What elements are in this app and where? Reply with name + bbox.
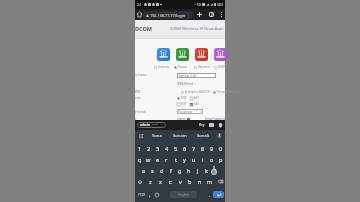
button[interactable]: Passwords	[199, 122, 205, 128]
button[interactable]: i	[198, 154, 207, 165]
button[interactable]: n	[195, 176, 205, 187]
button[interactable]: Home	[135, 9, 143, 20]
staticText: Router	[178, 65, 188, 69]
button[interactable]: Sona	[146, 130, 168, 141]
staticText: c	[169, 178, 172, 185]
button[interactable]: Sonali	[191, 130, 214, 141]
staticText: admin	[140, 123, 151, 127]
button[interactable]: Sonipat 2.4G	[177, 73, 216, 78]
button[interactable]: o	[207, 154, 216, 165]
staticText: 9	[210, 145, 214, 152]
button[interactable]: Comma	[147, 187, 153, 202]
button[interactable]: y	[180, 154, 189, 165]
button[interactable]: 2	[144, 143, 153, 154]
button[interactable]: 7	[189, 143, 198, 154]
button[interactable]: r	[162, 154, 171, 165]
button[interactable]: More options	[218, 9, 225, 20]
staticText: x	[159, 178, 162, 185]
button[interactable]: j	[193, 165, 202, 176]
button[interactable]: b	[185, 176, 195, 187]
button[interactable]: t	[171, 154, 180, 165]
button[interactable]: s	[148, 165, 157, 176]
button[interactable]: 0	[216, 143, 225, 154]
button[interactable]: Repeater	[194, 65, 214, 69]
button[interactable]: Shift	[135, 176, 145, 187]
button[interactable]: WPA-Mixed	[177, 82, 196, 86]
button[interactable]: Payment cards	[208, 122, 214, 128]
button[interactable]: WISP	[214, 48, 227, 61]
staticText: e	[156, 156, 160, 163]
button[interactable]: w	[144, 154, 153, 165]
button[interactable]: Keyboard settings	[135, 130, 146, 141]
button[interactable]: Voice input	[214, 130, 225, 141]
button[interactable]: Router	[174, 65, 194, 69]
staticText: 34%	[217, 3, 223, 7]
button[interactable]: Internet Port	[154, 65, 174, 69]
button[interactable]: Show Password	[205, 117, 225, 121]
button[interactable]: admin	[177, 116, 198, 121]
button[interactable]: AES	[190, 96, 199, 100]
staticText: suite	[135, 96, 141, 100]
staticText: d	[160, 167, 164, 174]
staticText: y	[183, 156, 186, 163]
button[interactable]: Sonam	[168, 130, 191, 141]
button[interactable]: l	[211, 165, 220, 176]
staticText: m	[207, 178, 213, 185]
staticText: 5G	[197, 3, 201, 7]
button[interactable]: 6	[180, 143, 189, 154]
button[interactable]: d	[157, 165, 166, 176]
button[interactable]: 8	[198, 143, 207, 154]
button[interactable]: Addresses	[217, 122, 223, 128]
staticText: Passphrase	[178, 110, 193, 114]
button[interactable]: Period	[207, 187, 213, 202]
button[interactable]: 3	[153, 143, 162, 154]
staticText: TKIP	[181, 102, 187, 106]
button[interactable]: 9	[207, 143, 216, 154]
staticText: o	[210, 156, 214, 163]
staticText: Key	[199, 123, 205, 127]
button[interactable]: e	[153, 154, 162, 165]
button[interactable]: 5	[171, 143, 180, 154]
button[interactable]: Internet Port	[157, 48, 170, 61]
button[interactable]: x	[155, 176, 165, 187]
button[interactable]: admin	[137, 122, 166, 128]
button[interactable]: Enter	[213, 191, 224, 198]
button[interactable]: Enterprise (RADIUS)	[181, 90, 211, 94]
button[interactable]: h	[184, 165, 193, 176]
button[interactable]: Emoji	[153, 187, 160, 202]
button[interactable]: u	[189, 154, 198, 165]
button[interactable]: ?123	[136, 187, 147, 202]
button[interactable]: Switch tabs	[205, 9, 218, 20]
button[interactable]: z	[145, 176, 155, 187]
button[interactable]: TKIP	[177, 102, 187, 106]
button[interactable]: g	[175, 165, 184, 176]
button[interactable]: Passphrase	[177, 109, 203, 114]
button[interactable]: New tab	[193, 9, 205, 20]
button[interactable]: Personal (Pre-Sha	[213, 90, 240, 94]
button[interactable]: Repeater	[195, 48, 208, 61]
button[interactable]: 192.168.77.77/login	[143, 11, 193, 19]
button[interactable]: 4	[162, 143, 171, 154]
staticText: b	[188, 178, 192, 185]
button[interactable]: f	[166, 165, 175, 176]
button[interactable]: a	[140, 165, 148, 176]
button[interactable]: TKIP	[177, 96, 187, 100]
button[interactable]: q	[135, 154, 144, 165]
staticText: Sonam	[173, 133, 187, 139]
button[interactable]: c	[165, 176, 175, 187]
button[interactable]: 1	[135, 143, 144, 154]
button[interactable]: Backspace	[215, 176, 225, 187]
staticText: a	[142, 167, 146, 174]
button[interactable]: v	[175, 176, 185, 187]
button[interactable]: p	[216, 154, 225, 165]
button[interactable]: m	[205, 176, 215, 187]
staticText: f	[170, 167, 172, 174]
staticText: n	[198, 178, 202, 185]
button[interactable]: AES	[190, 102, 199, 106]
button[interactable]: k	[202, 165, 211, 176]
button[interactable]: Router	[176, 48, 189, 61]
staticText: ,	[149, 192, 151, 198]
button[interactable]: Space	[170, 191, 197, 198]
button[interactable]: WISP	[214, 65, 234, 69]
staticText: w	[146, 156, 151, 163]
